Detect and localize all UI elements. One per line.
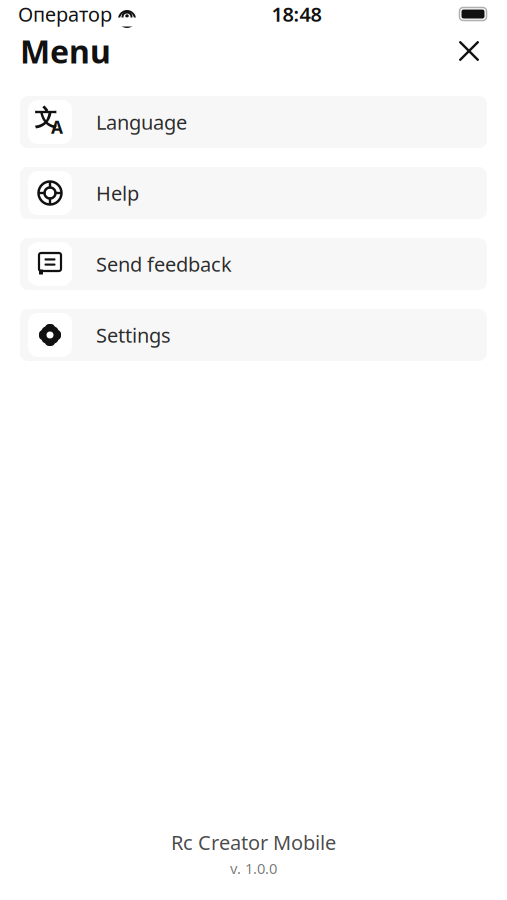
button[interactable]: 文 (20, 96, 487, 148)
button[interactable]: Close (449, 31, 489, 71)
staticText: v. 1.0.0 (230, 858, 277, 878)
staticText: Оператор (18, 1, 112, 27)
button[interactable]: Send feedback (20, 238, 487, 290)
staticText: 文 (34, 104, 57, 132)
staticText: Language (96, 109, 187, 135)
staticText: Help (96, 180, 139, 206)
button[interactable]: Settings (20, 309, 487, 361)
staticText: A (51, 115, 63, 138)
staticText: Menu (20, 30, 111, 72)
staticText: 18:48 (271, 1, 321, 27)
button[interactable]: Help (20, 167, 487, 219)
staticText: Send feedback (96, 251, 232, 277)
staticText: Settings (96, 322, 171, 348)
staticText: Rc Creator Mobile (171, 829, 336, 856)
